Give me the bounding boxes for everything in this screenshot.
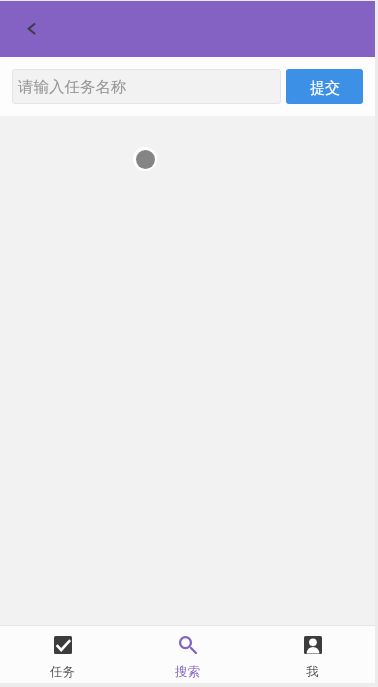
button[interactable]: Back xyxy=(18,15,46,43)
staticText: 任务 xyxy=(50,664,75,680)
button[interactable]: 提交 xyxy=(286,69,363,104)
staticText: 请输入任务名称 xyxy=(18,77,127,97)
staticText: 我 xyxy=(306,664,319,680)
button[interactable]: 搜索 xyxy=(125,626,250,683)
button[interactable]: 任务 xyxy=(0,626,125,683)
button[interactable]: 请输入任务名称 xyxy=(12,69,281,104)
staticText: 搜索 xyxy=(175,664,200,680)
staticText: 提交 xyxy=(310,79,340,98)
button[interactable]: 我 xyxy=(250,626,375,683)
